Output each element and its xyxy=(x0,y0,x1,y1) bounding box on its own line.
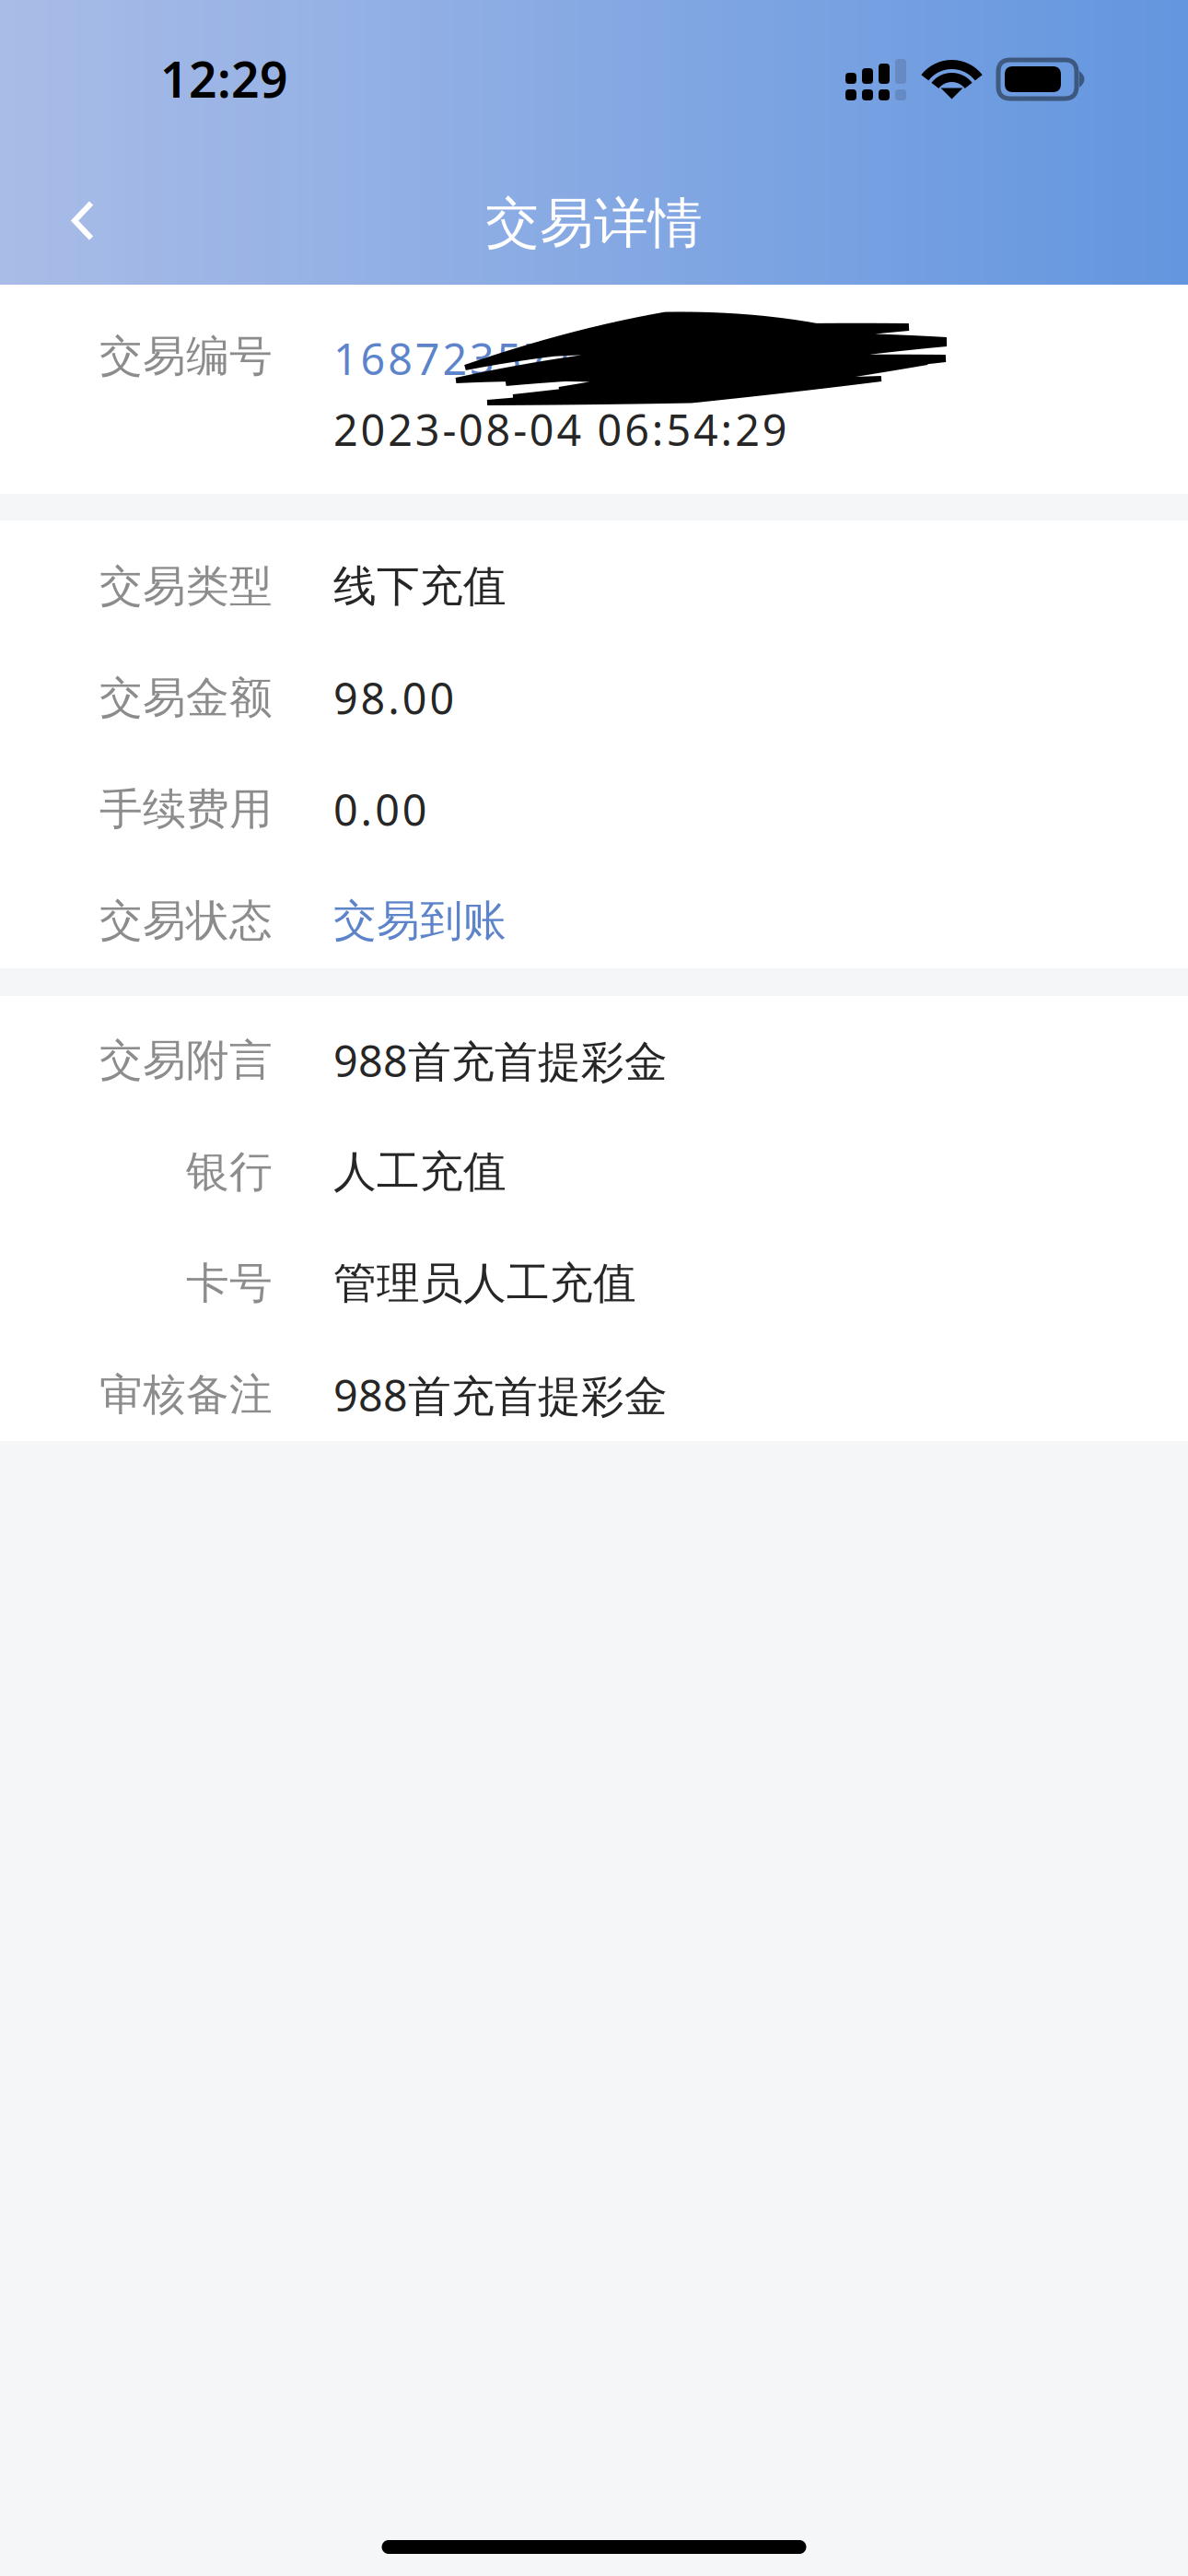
staticText: 交易附言 xyxy=(99,1034,273,1087)
staticText: 988首充首提彩金 xyxy=(333,1032,668,1089)
staticText: 卡号 xyxy=(186,1257,273,1310)
staticText: 交易金额 xyxy=(99,671,273,724)
staticText: 168723571489 xyxy=(333,330,658,387)
staticText: 988首充首提彩金 xyxy=(333,1366,668,1423)
staticText: 线下充值 xyxy=(333,560,507,613)
staticText: 交易到账 xyxy=(333,894,507,947)
staticText: 交易类型 xyxy=(99,560,273,613)
staticText: 银行 xyxy=(186,1145,273,1198)
staticText: 交易详情 xyxy=(485,190,703,257)
staticText: 0.00 xyxy=(333,781,427,838)
staticText: 手续费用 xyxy=(99,783,273,836)
staticText: 管理员人工充值 xyxy=(333,1257,636,1310)
button[interactable]: Back xyxy=(0,149,135,265)
staticText: 98.00 xyxy=(333,669,454,726)
staticText: 人工充值 xyxy=(333,1145,507,1198)
staticText: 审核备注 xyxy=(99,1368,273,1421)
staticText: 交易状态 xyxy=(99,894,273,947)
staticText: 12:29 xyxy=(160,46,288,111)
staticText: 交易编号 xyxy=(99,330,273,383)
staticText: 2023-08-04 06:54:29 xyxy=(333,401,787,458)
button[interactable]: 168723571489 xyxy=(333,330,658,387)
